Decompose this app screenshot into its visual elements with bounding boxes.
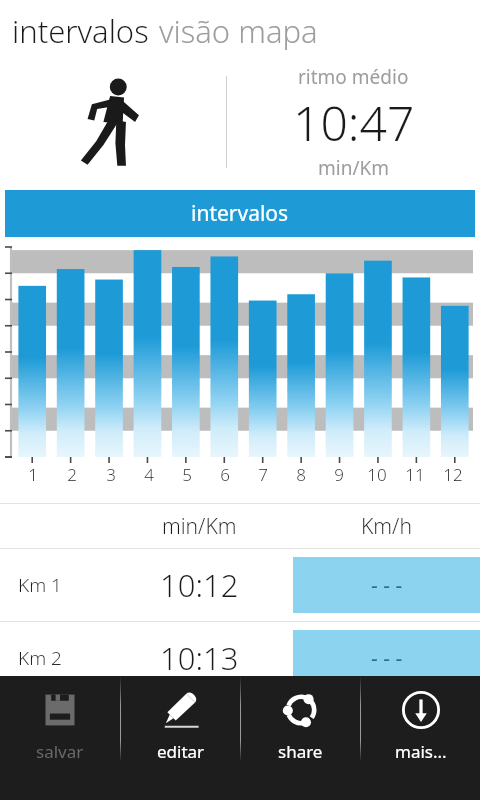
staticText: - - - <box>371 644 403 673</box>
staticText: mais... <box>395 740 447 763</box>
staticText: 9 <box>334 463 344 486</box>
staticText: min/Km <box>318 155 390 181</box>
staticText: Km/h <box>361 512 412 541</box>
staticText: - - - <box>371 571 403 600</box>
staticText: editar <box>157 740 205 763</box>
staticText: Km 1 <box>18 572 62 598</box>
staticText: 3 <box>106 463 116 486</box>
staticText: 4 <box>144 463 154 486</box>
staticText: 10:47 <box>293 90 415 155</box>
staticText: min/Km <box>162 512 237 541</box>
staticText: intervalos <box>191 199 289 228</box>
staticText: 7 <box>258 463 268 486</box>
staticText: salvar <box>36 740 84 763</box>
staticText: 5 <box>182 463 192 486</box>
staticText: 1 <box>28 463 38 486</box>
staticText: 12 <box>443 463 463 486</box>
button[interactable]: Km 1 <box>0 549 480 621</box>
button[interactable]: editar <box>121 676 240 800</box>
staticText: intervalos <box>12 10 149 52</box>
staticText: 11 <box>405 463 425 486</box>
staticText: 6 <box>220 463 230 486</box>
staticText: Km 2 <box>18 645 62 671</box>
button[interactable]: mais... <box>361 676 480 800</box>
staticText: 2 <box>67 463 77 486</box>
button[interactable]: intervalos <box>5 190 475 237</box>
staticText: 10 <box>367 463 387 486</box>
button[interactable]: Km 2 <box>0 622 480 694</box>
staticText: share <box>278 740 323 763</box>
staticText: 10:12 <box>160 564 239 606</box>
button[interactable]: salvar <box>0 676 120 800</box>
staticText: 8 <box>296 463 306 486</box>
staticText: 10:13 <box>160 637 239 679</box>
staticText: visão mapa informações <box>159 10 480 52</box>
staticText: ritmo médio <box>298 64 409 90</box>
button[interactable]: share <box>241 676 360 800</box>
